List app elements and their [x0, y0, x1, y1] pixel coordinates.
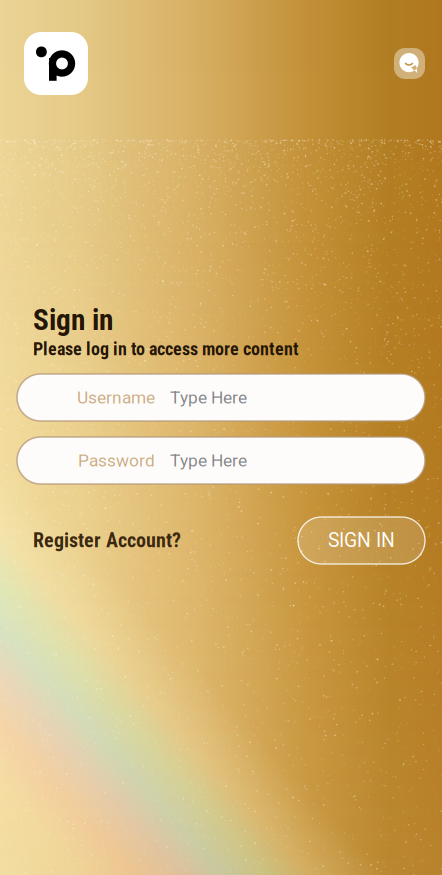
staticText: Password — [78, 450, 155, 471]
staticText: Type Here — [170, 387, 247, 408]
button[interactable]: SIGN IN — [298, 517, 425, 564]
staticText: Register Account? — [33, 529, 181, 552]
staticText: Username — [77, 387, 155, 408]
button[interactable]: Username — [17, 374, 425, 421]
staticText: Sign in — [33, 303, 113, 337]
staticText: SIGN IN — [328, 529, 395, 552]
staticText: Please log in to access more content — [33, 338, 299, 360]
button[interactable]: Register Account? — [33, 529, 181, 552]
button[interactable]: Chat support — [394, 48, 425, 79]
button[interactable]: Password — [17, 437, 425, 484]
staticText: Type Here — [170, 450, 247, 471]
